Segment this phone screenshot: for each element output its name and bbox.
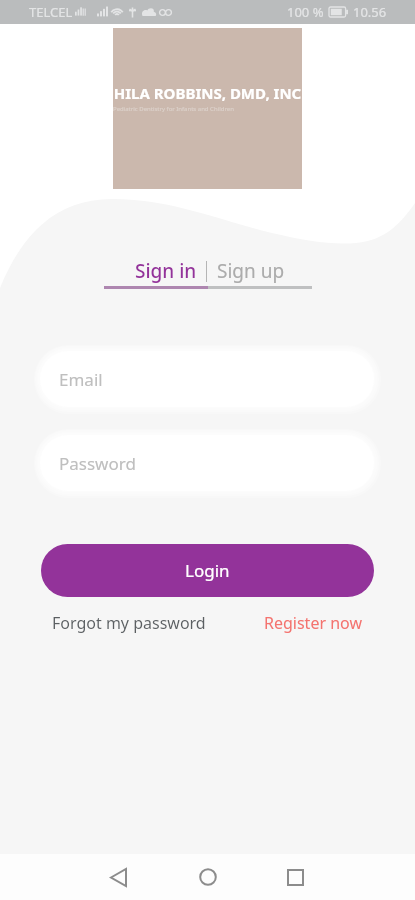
button[interactable]: Home (163, 854, 252, 900)
button[interactable]: Sign in (104, 258, 208, 289)
button[interactable]: Back (74, 854, 163, 900)
button[interactable]: Sign up (208, 258, 312, 289)
button[interactable]: Email (40, 351, 374, 407)
staticText: Sign up (217, 258, 285, 284)
staticText: Register now (264, 612, 363, 634)
button[interactable]: Recents (251, 854, 340, 900)
staticText: Password (59, 452, 136, 475)
staticText: 100 % (287, 3, 324, 21)
staticText: Login (185, 559, 230, 582)
button[interactable]: Register now (264, 612, 363, 634)
staticText: HILA ROBBINS, DMD, INC (113, 83, 302, 103)
staticText: TELCEL (29, 3, 73, 21)
staticText: Sign in (135, 258, 197, 284)
button[interactable]: Login (41, 544, 374, 597)
button[interactable]: Forgot my password (52, 612, 206, 634)
staticText: Email (59, 368, 103, 391)
button[interactable]: Password (40, 435, 374, 491)
staticText: Pediatric Dentistry for Infants and Chil… (113, 105, 302, 113)
staticText: 10.56 (353, 3, 387, 21)
staticText: Forgot my password (52, 612, 206, 634)
